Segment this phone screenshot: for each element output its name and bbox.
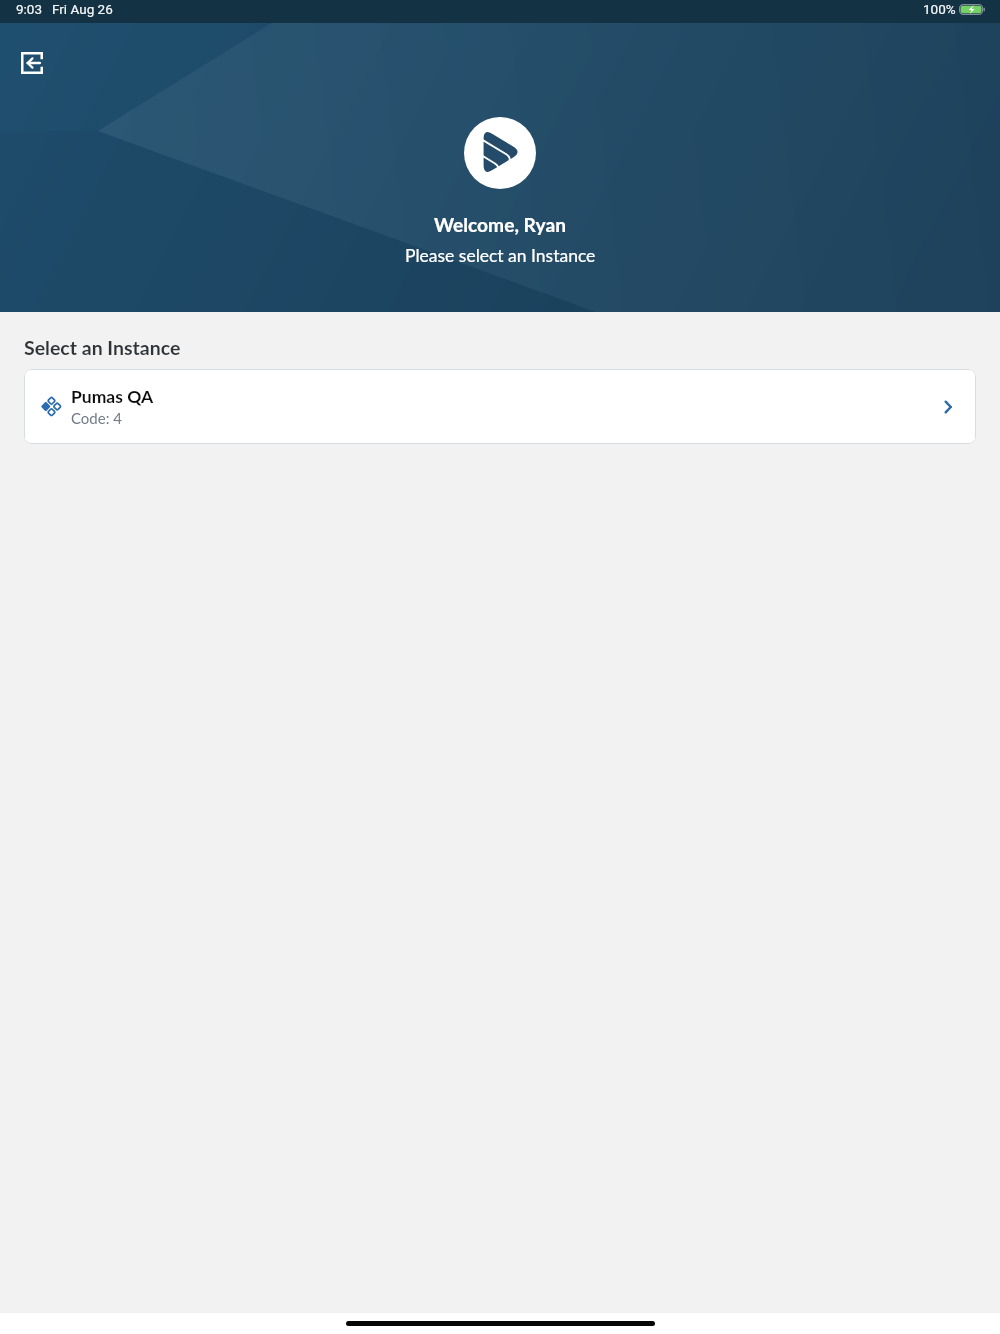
staticText: Pumas QA <box>71 386 154 407</box>
staticText: Fri Aug 26 <box>52 1 113 17</box>
staticText: Code: 4 <box>71 409 122 427</box>
staticText: Welcome, Ryan <box>434 213 567 236</box>
staticText: Please select an Instance <box>405 245 596 266</box>
staticText: Select an Instance <box>24 336 181 359</box>
button[interactable]: Pumas QA <box>24 369 976 444</box>
button[interactable]: Log out <box>10 41 54 85</box>
staticText: 9:03 <box>16 1 43 17</box>
staticText: 100% <box>923 1 956 17</box>
